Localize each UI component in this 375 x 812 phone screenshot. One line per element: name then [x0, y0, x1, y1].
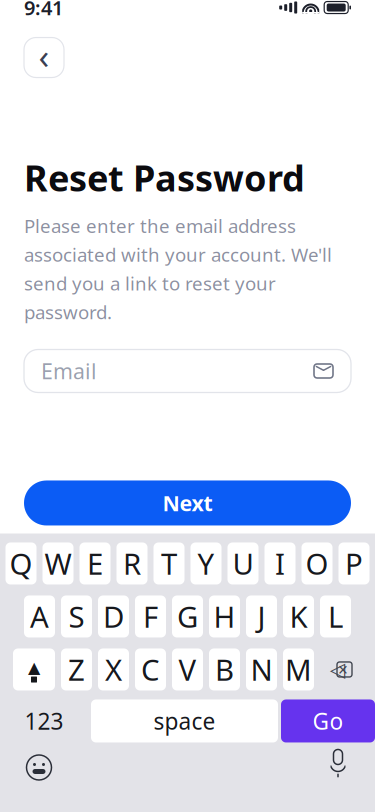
staticText: B: [215, 650, 234, 689]
staticText: 123: [24, 706, 63, 736]
staticText: N: [250, 650, 272, 689]
button[interactable]: O: [301, 542, 332, 584]
button[interactable]: W: [42, 542, 73, 584]
button[interactable]: Delete: [320, 648, 362, 690]
button[interactable]: N: [246, 648, 277, 690]
staticText: P: [345, 544, 363, 583]
button[interactable]: H: [209, 595, 240, 637]
button[interactable]: J: [246, 595, 277, 637]
staticText: ‹: [38, 32, 49, 78]
staticText: Z: [68, 650, 85, 689]
staticText: K: [289, 597, 307, 636]
button[interactable]: Next: [24, 480, 351, 525]
staticText: I: [275, 544, 285, 583]
staticText: S: [68, 597, 84, 636]
button[interactable]: T: [153, 542, 184, 584]
button[interactable]: D: [98, 595, 129, 637]
staticText: ◁: [330, 658, 345, 681]
button[interactable]: Go: [281, 699, 375, 742]
button[interactable]: E: [79, 542, 110, 584]
button[interactable]: V: [172, 648, 203, 690]
button[interactable]: R: [116, 542, 147, 584]
button[interactable]: Q: [5, 542, 36, 584]
staticText: ▲: [28, 658, 40, 677]
button[interactable]: P: [338, 542, 369, 584]
staticText: A: [30, 597, 49, 636]
staticText: J: [257, 597, 265, 636]
button[interactable]: M: [283, 648, 314, 690]
button[interactable]: Dictate: [325, 752, 351, 782]
staticText: R: [123, 544, 141, 583]
staticText: U: [232, 544, 253, 583]
staticText: W: [44, 544, 71, 583]
button[interactable]: B: [209, 648, 240, 690]
staticText: V: [178, 650, 196, 689]
button[interactable]: X: [98, 648, 129, 690]
button[interactable]: S: [61, 595, 92, 637]
staticText: space: [153, 706, 215, 736]
staticText: E: [87, 544, 103, 583]
button[interactable]: Y: [190, 542, 221, 584]
staticText: F: [143, 597, 158, 636]
staticText: Y: [197, 544, 214, 583]
staticText: Email: [41, 357, 97, 385]
staticText: X: [105, 650, 122, 689]
staticText: G: [177, 597, 198, 636]
button[interactable]: I: [264, 542, 295, 584]
staticText: H: [213, 597, 235, 636]
button[interactable]: F: [135, 595, 166, 637]
staticText: 9:41: [24, 0, 63, 21]
button[interactable]: G: [172, 595, 203, 637]
button[interactable]: A: [24, 595, 55, 637]
button[interactable]: C: [135, 648, 166, 690]
button[interactable]: space: [91, 699, 278, 742]
button[interactable]: Z: [61, 648, 92, 690]
button[interactable]: Back: [24, 37, 64, 77]
staticText: L: [328, 597, 343, 636]
staticText: D: [103, 597, 124, 636]
button[interactable]: Shift: [13, 648, 55, 690]
staticText: Reset Password: [24, 153, 305, 201]
staticText: M: [285, 650, 312, 689]
button[interactable]: Email: [24, 349, 351, 392]
button[interactable]: Emoji: [24, 752, 54, 782]
staticText: Please enter the email address associate…: [24, 213, 332, 324]
button[interactable]: 123: [0, 699, 88, 742]
button[interactable]: K: [283, 595, 314, 637]
button[interactable]: L: [320, 595, 351, 637]
staticText: T: [161, 544, 177, 583]
staticText: Q: [9, 544, 32, 583]
staticText: O: [305, 544, 328, 583]
staticText: Next: [162, 489, 212, 517]
staticText: Go: [312, 706, 343, 736]
button[interactable]: U: [227, 542, 258, 584]
staticText: C: [141, 650, 160, 689]
staticText: ×: [338, 658, 348, 681]
